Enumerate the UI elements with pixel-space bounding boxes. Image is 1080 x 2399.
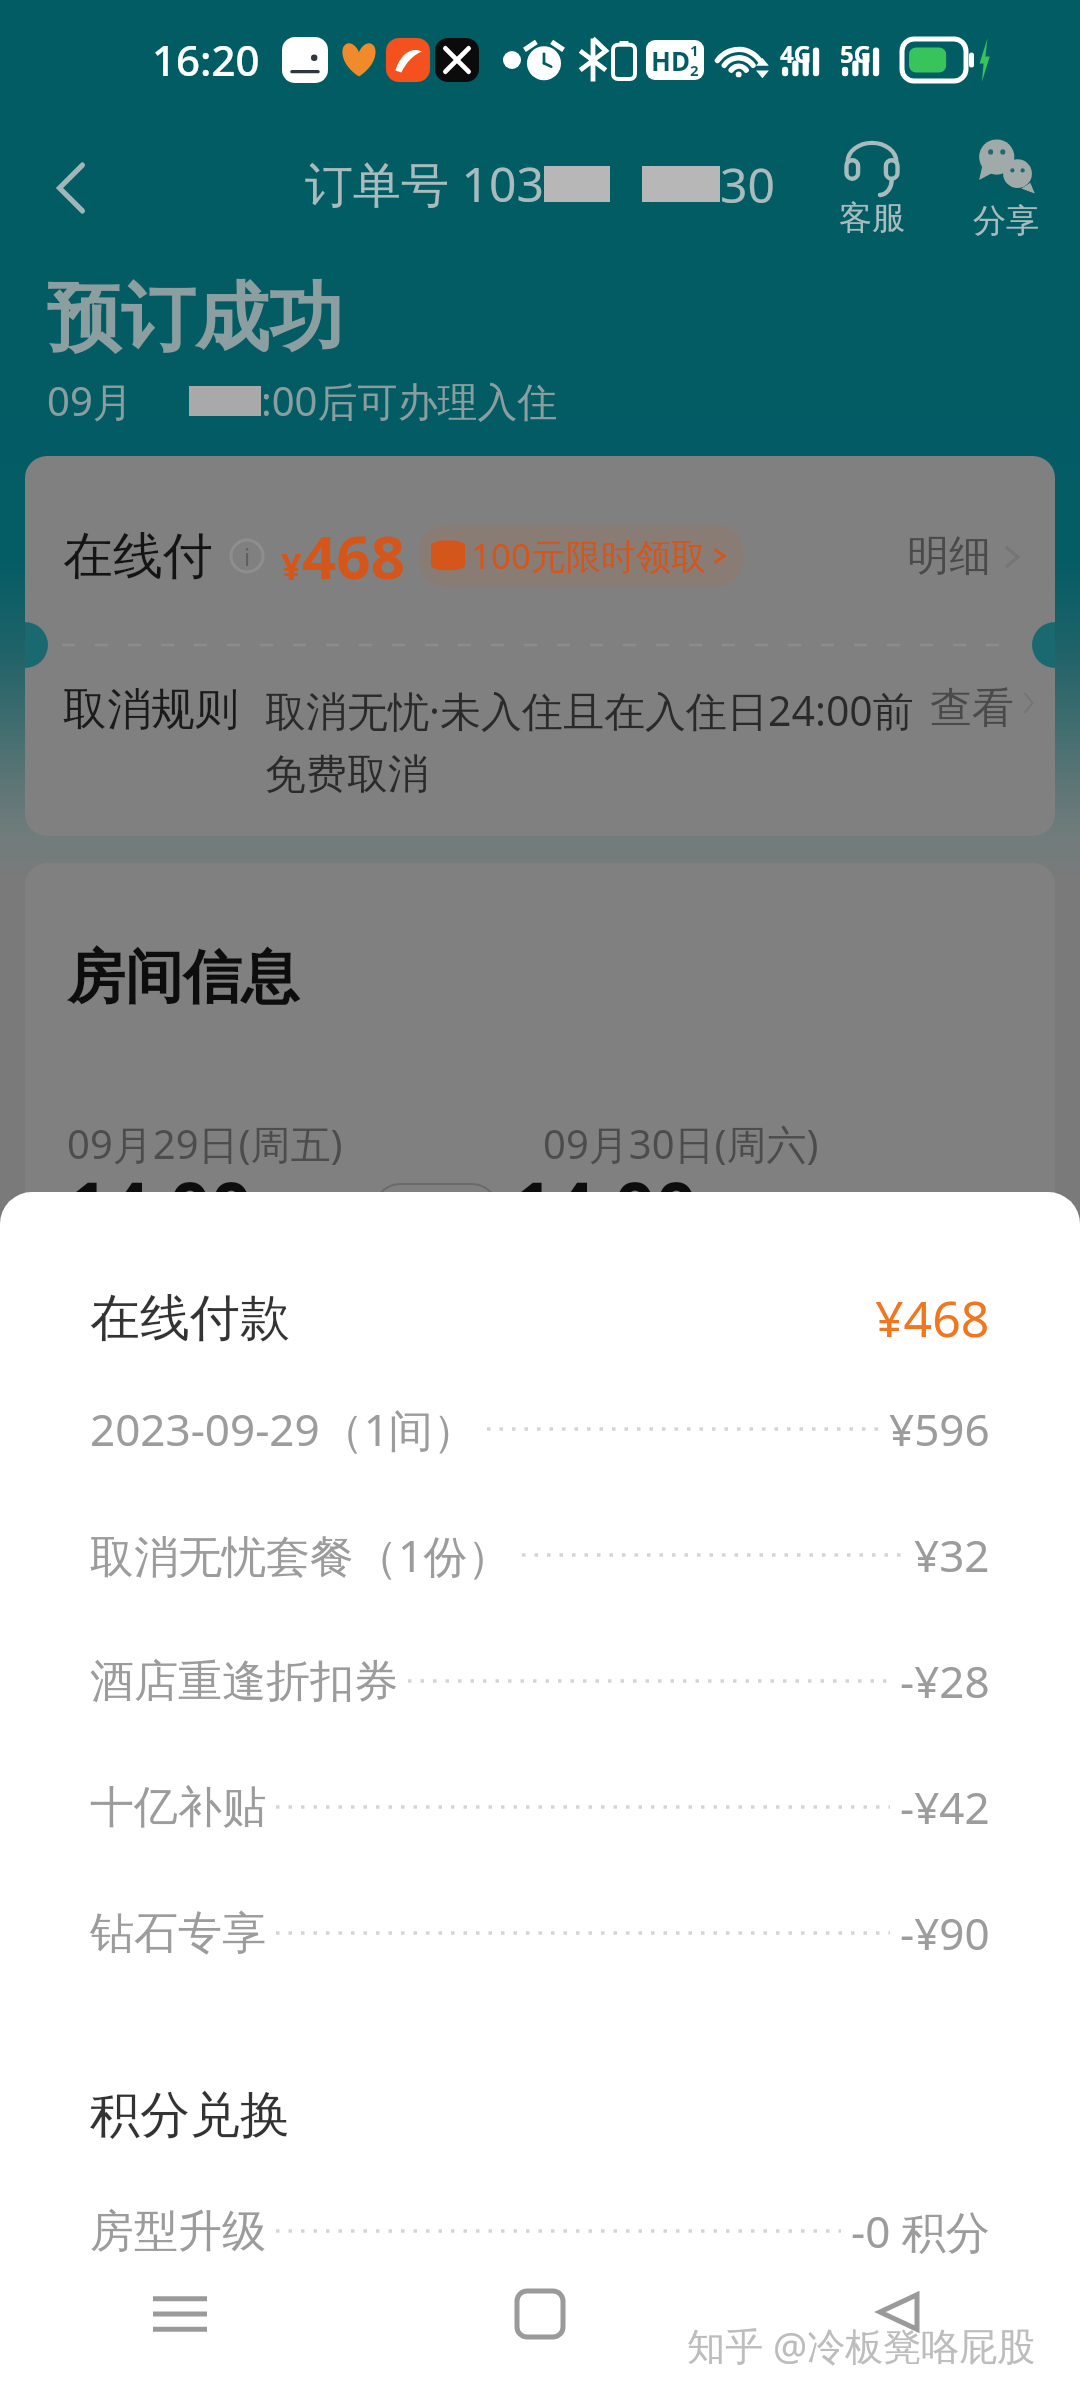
staticText: 30	[720, 152, 775, 217]
staticText: 订单号 103	[305, 151, 544, 217]
staticText: 4G	[780, 37, 812, 70]
staticText: 取消无忧·未入住且在入住日24:00前免费取消	[265, 682, 930, 800]
staticText: 查看	[930, 682, 1014, 735]
staticText: ¥	[281, 542, 302, 591]
button[interactable]: Home	[360, 2249, 720, 2379]
staticText: ¥468	[875, 1284, 990, 1352]
staticText: 取消规则	[63, 682, 239, 737]
staticText: 09月	[47, 373, 133, 428]
staticText: 09月29日(周五)	[67, 1116, 343, 1171]
button[interactable]: 分享	[942, 128, 1070, 248]
button[interactable]: Back	[720, 2249, 1080, 2379]
staticText: 预订成功	[47, 272, 343, 365]
staticText: 钻石专享	[90, 1906, 266, 1961]
button[interactable]: 钻石专享	[0, 1870, 1080, 1996]
button[interactable]: Recent apps	[0, 2249, 360, 2379]
button[interactable]: 客服	[808, 131, 936, 245]
button[interactable]: 在线付款	[90, 1284, 990, 1352]
staticText: 知乎	[687, 2319, 773, 2371]
staticText: -0 积分	[851, 2201, 990, 2261]
staticText: i	[244, 540, 251, 573]
staticText: 16:20	[152, 31, 260, 88]
staticText: 1	[690, 40, 699, 60]
staticText: 14:00	[512, 1157, 697, 1255]
staticText: 2023-09-29（1间）	[90, 1399, 477, 1459]
staticText: 09月30日(周六)	[543, 1116, 819, 1171]
staticText: -¥90	[900, 1903, 990, 1963]
staticText: 分享	[973, 200, 1039, 242]
staticText: :00后可办理入住	[261, 373, 558, 428]
button[interactable]: 房型升级	[0, 2168, 1080, 2294]
staticText: ¥32	[914, 1525, 990, 1585]
button[interactable]: 酒店重逢折扣券	[0, 1618, 1080, 1744]
staticText: 明细	[907, 530, 991, 583]
staticText: 客服	[839, 197, 905, 239]
staticText: 在线付	[63, 525, 213, 588]
staticText: 2	[690, 60, 699, 80]
staticText: 5G	[840, 37, 872, 70]
staticText: HD	[651, 43, 690, 78]
staticText: 房间信息	[67, 941, 299, 1014]
staticText: 468	[302, 515, 405, 597]
button[interactable]: Back	[22, 138, 122, 238]
staticText: -¥42	[900, 1777, 990, 1837]
staticText: 100元限时领取	[471, 532, 707, 580]
staticText: 酒店重逢折扣券	[90, 1654, 398, 1709]
staticText: ¥596	[889, 1399, 990, 1459]
staticText: 共1晚	[392, 1188, 480, 1234]
staticText: 在线付款	[90, 1287, 290, 1350]
staticText: @冷板凳咯屁股	[773, 2319, 1036, 2371]
button[interactable]: 明细	[907, 530, 1033, 583]
button[interactable]: 十亿补贴	[0, 1744, 1080, 1870]
staticText: 积分兑换	[90, 2084, 290, 2147]
staticText: 取消无忧套餐（1份）	[90, 1525, 512, 1585]
staticText: -¥28	[900, 1651, 990, 1711]
staticText: 房型升级	[90, 2204, 266, 2259]
button[interactable]: 取消无忧套餐（1份）	[0, 1492, 1080, 1618]
staticText: 14:00	[67, 1157, 252, 1255]
button[interactable]: 2023-09-29（1间）	[0, 1366, 1080, 1492]
staticText: 十亿补贴	[90, 1780, 266, 1835]
button[interactable]: 100元限时领取	[419, 525, 743, 587]
button[interactable]: 查看	[930, 682, 1043, 735]
